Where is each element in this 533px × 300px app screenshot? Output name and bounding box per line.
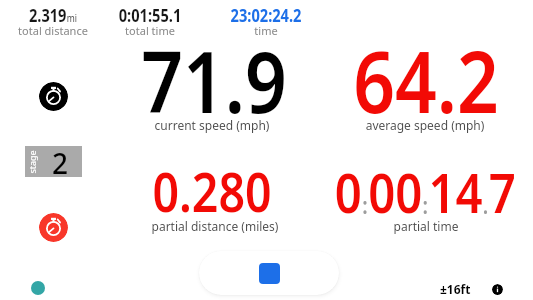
- staticText: 2.319: [29, 4, 67, 27]
- staticText: partial time: [276, 218, 533, 234]
- staticText: 71.9: [85, 22, 343, 138]
- staticText: current speed (mph): [62, 117, 362, 133]
- button[interactable]: Info: [492, 284, 503, 295]
- staticText: 14: [428, 154, 483, 229]
- button[interactable]: Stage stopwatch: [39, 82, 68, 111]
- staticText: 00: [368, 154, 422, 229]
- button[interactable]: stage: [25, 146, 82, 177]
- button[interactable]: Reset stage: [39, 213, 68, 242]
- staticText: 23:02:24.2: [223, 4, 309, 27]
- staticText: 2: [52, 144, 69, 175]
- staticText: total distance: [3, 23, 103, 38]
- staticText: 0: [335, 154, 362, 229]
- staticText: 64.2: [297, 22, 533, 138]
- staticText: time: [216, 23, 316, 38]
- staticText: stage: [26, 150, 38, 174]
- staticText: ±16ft: [440, 281, 471, 297]
- staticText: .: [483, 189, 489, 220]
- staticText: partial distance (miles): [65, 218, 365, 234]
- button[interactable]: Stop: [199, 251, 339, 295]
- staticText: average speed (mph): [275, 117, 533, 133]
- staticText: total time: [100, 23, 200, 38]
- button[interactable]: GPS status: [31, 281, 45, 295]
- staticText: :: [422, 189, 428, 220]
- staticText: :: [362, 189, 368, 220]
- staticText: 0.280: [83, 154, 341, 228]
- staticText: 0:01:55.1: [107, 4, 193, 27]
- staticText: mi: [67, 11, 77, 25]
- staticText: 7: [489, 154, 516, 229]
